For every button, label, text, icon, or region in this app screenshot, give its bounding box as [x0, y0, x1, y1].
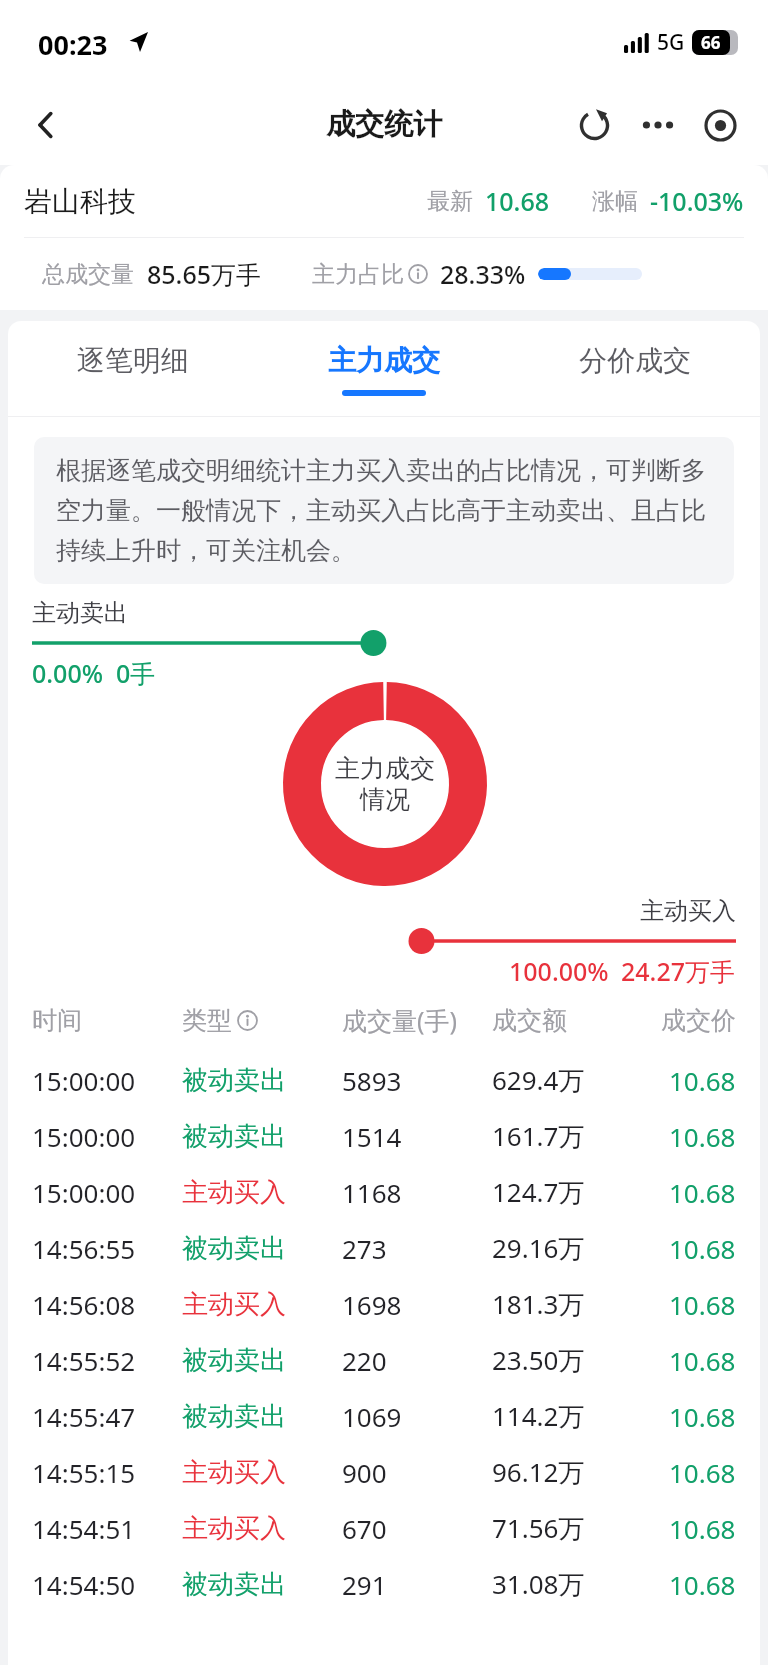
staticText: 161.7万: [492, 1118, 637, 1154]
staticText: 主力成交: [328, 343, 440, 378]
staticText: 被动卖出: [182, 1232, 342, 1265]
staticText: 29.16万: [492, 1230, 637, 1266]
staticText: 主力占比: [312, 260, 404, 289]
staticText: 14:55:52: [32, 1343, 182, 1378]
staticText: 1168: [342, 1175, 492, 1210]
staticText: 情况: [360, 784, 410, 815]
button[interactable]: 逐笔明细: [8, 321, 258, 417]
button[interactable]: Refresh: [568, 99, 620, 151]
staticText: 根据逐笔成交明细统计主力买入卖出的占比情况，可判断多空力量。一般情况下，主动买入…: [56, 455, 712, 566]
button[interactable]: 15:00:00: [8, 1164, 760, 1220]
button[interactable]: 14:54:51: [8, 1500, 760, 1556]
staticText: 10.68: [669, 1343, 736, 1378]
staticText: 10.68: [669, 1567, 736, 1602]
button[interactable]: 14:55:52: [8, 1332, 760, 1388]
staticText: 10.68: [669, 1119, 736, 1154]
staticText: 岩山科技: [24, 184, 136, 219]
staticText: 85.65万手: [147, 257, 262, 291]
staticText: 15:00:00: [32, 1119, 182, 1154]
staticText: 10.68: [669, 1231, 736, 1266]
staticText: 291: [342, 1567, 492, 1602]
button[interactable]: 14:55:47: [8, 1388, 760, 1444]
staticText: 5G: [657, 28, 685, 57]
staticText: 00:23: [38, 26, 108, 63]
button[interactable]: 14:55:15: [8, 1444, 760, 1500]
staticText: 10.68: [669, 1287, 736, 1322]
staticText: 10.68: [669, 1399, 736, 1434]
staticText: 100.00%: [509, 954, 609, 988]
staticText: 14:54:51: [32, 1511, 182, 1546]
staticText: 1698: [342, 1287, 492, 1322]
staticText: 670: [342, 1511, 492, 1546]
staticText: 0手: [116, 656, 156, 690]
staticText: 被动卖出: [182, 1400, 342, 1433]
staticText: 124.7万: [492, 1174, 637, 1210]
staticText: 时间: [32, 1005, 182, 1036]
staticText: 10.68: [669, 1455, 736, 1490]
staticText: 23.50万: [492, 1342, 637, 1378]
staticText: 主动买入: [182, 1456, 342, 1489]
staticText: 总成交量: [42, 260, 134, 289]
staticText: 96.12万: [492, 1454, 637, 1490]
staticText: 5893: [342, 1063, 492, 1098]
staticText: 逐笔明细: [77, 343, 189, 378]
staticText: 10.68: [669, 1175, 736, 1210]
staticText: 10.68: [669, 1063, 736, 1098]
staticText: 1069: [342, 1399, 492, 1434]
button[interactable]: 15:00:00: [8, 1052, 760, 1108]
staticText: 0.00%: [32, 656, 104, 690]
staticText: 被动卖出: [182, 1568, 342, 1601]
staticText: 涨幅: [592, 187, 638, 216]
button[interactable]: 分价成交: [509, 321, 760, 417]
staticText: 被动卖出: [182, 1120, 342, 1153]
staticText: 629.4万: [492, 1062, 637, 1098]
staticText: 181.3万: [492, 1286, 637, 1322]
staticText: 28.33%: [440, 257, 526, 291]
staticText: 24.27万手: [621, 954, 736, 988]
staticText: 成交统计: [326, 106, 442, 143]
button[interactable]: 14:54:50: [8, 1556, 760, 1612]
button[interactable]: 14:56:08: [8, 1276, 760, 1332]
button[interactable]: 14:56:55: [8, 1220, 760, 1276]
staticText: -10.03%: [650, 184, 744, 218]
staticText: 14:55:15: [32, 1455, 182, 1490]
staticText: 220: [342, 1343, 492, 1378]
staticText: 主力成交: [335, 753, 435, 784]
staticText: 14:56:08: [32, 1287, 182, 1322]
staticText: 1514: [342, 1119, 492, 1154]
staticText: 14:56:55: [32, 1231, 182, 1266]
staticText: 273: [342, 1231, 492, 1266]
button[interactable]: 15:00:00: [8, 1108, 760, 1164]
button[interactable]: Back: [20, 99, 72, 151]
button[interactable]: 主力成交: [258, 321, 509, 417]
staticText: 主动卖出: [32, 598, 128, 628]
staticText: 15:00:00: [32, 1063, 182, 1098]
button[interactable]: Target: [694, 99, 746, 151]
staticText: 14:54:50: [32, 1567, 182, 1602]
staticText: 71.56万: [492, 1510, 637, 1546]
staticText: 主动买入: [182, 1176, 342, 1209]
staticText: 被动卖出: [182, 1344, 342, 1377]
staticText: 成交价: [661, 1005, 736, 1036]
staticText: 分价成交: [579, 343, 691, 378]
staticText: 成交额: [492, 1005, 637, 1036]
button[interactable]: More: [632, 99, 684, 151]
staticText: 主动买入: [182, 1288, 342, 1321]
staticText: 类型: [182, 1005, 232, 1036]
staticText: 114.2万: [492, 1398, 637, 1434]
staticText: 15:00:00: [32, 1175, 182, 1210]
staticText: 900: [342, 1455, 492, 1490]
staticText: 10.68: [485, 184, 550, 218]
staticText: 主动买入: [640, 896, 736, 926]
staticText: 主动买入: [182, 1512, 342, 1545]
staticText: 成交量(手): [342, 1003, 492, 1037]
staticText: 31.08万: [492, 1566, 637, 1602]
staticText: 14:55:47: [32, 1399, 182, 1434]
staticText: 66: [701, 31, 721, 54]
staticText: 10.68: [669, 1511, 736, 1546]
staticText: 最新: [427, 187, 473, 216]
staticText: 被动卖出: [182, 1064, 342, 1097]
